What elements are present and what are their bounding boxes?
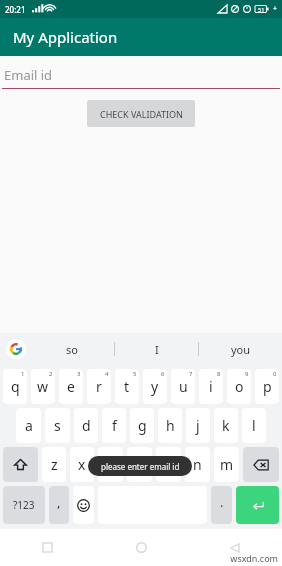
staticText: o [235, 377, 244, 396]
staticText: c [107, 455, 114, 474]
staticText: please enter email id [101, 461, 180, 472]
staticText: v [136, 455, 144, 474]
staticText: e [67, 377, 75, 396]
staticText: s [54, 416, 61, 435]
button[interactable]: Recents [0, 529, 94, 566]
staticText: g [138, 416, 147, 435]
staticText: 51 [258, 6, 265, 13]
staticText: so [66, 342, 78, 357]
button[interactable]: Email id [0, 66, 282, 89]
staticText: t [124, 377, 130, 396]
button[interactable]: u [171, 369, 195, 404]
staticText: 1 [21, 370, 25, 378]
button[interactable]: p [255, 369, 279, 404]
staticText: x [78, 455, 86, 474]
button[interactable]: d [74, 408, 98, 443]
button[interactable]: so [30, 333, 114, 365]
staticText: I [155, 342, 159, 357]
button[interactable]: q [3, 369, 27, 404]
staticText: ?123 [13, 498, 35, 512]
button[interactable]: Back [188, 529, 282, 566]
button[interactable]: t [115, 369, 139, 404]
staticText: i [209, 377, 213, 396]
staticText: p [263, 377, 272, 396]
button[interactable]: , [49, 486, 69, 524]
staticText: + [273, 4, 278, 14]
staticText: y [151, 377, 159, 396]
button[interactable]: Backspace [243, 447, 279, 482]
staticText: 6 [161, 370, 165, 378]
button[interactable]: Home [94, 529, 188, 566]
button[interactable]: Emoji [73, 486, 94, 524]
button[interactable]: r [87, 369, 111, 404]
button[interactable]: m [214, 447, 239, 482]
staticText: n [193, 455, 202, 474]
staticText: d [82, 416, 91, 435]
button[interactable]: Shift [3, 447, 38, 482]
staticText: l [252, 416, 256, 435]
staticText: q [11, 377, 20, 396]
staticText: 3 [77, 370, 81, 378]
staticText: b [164, 455, 173, 474]
button[interactable]: w [31, 369, 55, 404]
staticText: j [196, 416, 200, 435]
button[interactable]: I [115, 333, 198, 365]
staticText: w [37, 377, 49, 396]
staticText: 7 [189, 370, 193, 378]
button[interactable]: o [227, 369, 251, 404]
button[interactable]: s [45, 408, 70, 443]
button[interactable]: . [211, 486, 232, 524]
button[interactable]: i [199, 369, 223, 404]
staticText: u [179, 377, 188, 396]
button[interactable]: a [16, 408, 41, 443]
staticText: 9 [245, 370, 249, 378]
staticText: m [220, 455, 234, 474]
staticText: , [57, 493, 61, 511]
button[interactable]: you [199, 333, 282, 365]
staticText: z [51, 455, 58, 474]
staticText: f [112, 416, 117, 435]
staticText: 2 [49, 370, 53, 378]
staticText: 0 [273, 370, 277, 378]
button[interactable]: n [185, 447, 210, 482]
staticText: 4 [105, 370, 109, 378]
button[interactable]: CHECK VALIDATION [87, 100, 195, 127]
staticText: h [166, 416, 175, 435]
staticText: a [25, 416, 33, 435]
staticText: 5 [133, 370, 137, 378]
button[interactable]: e [59, 369, 83, 404]
button[interactable]: b [156, 447, 181, 482]
staticText: CHECK VALIDATION [100, 108, 183, 120]
button[interactable]: f [102, 408, 126, 443]
staticText: Email id [4, 66, 53, 84]
staticText: My Application [13, 27, 118, 47]
button[interactable]: Enter [236, 486, 279, 524]
button[interactable]: c [98, 447, 123, 482]
staticText: r [96, 377, 102, 396]
button[interactable]: l [242, 408, 266, 443]
button[interactable]: j [186, 408, 210, 443]
button[interactable]: ?123 [3, 486, 45, 524]
staticText: you [231, 342, 251, 357]
staticText: 8 [217, 370, 221, 378]
button[interactable]: k [214, 408, 238, 443]
button[interactable]: v [127, 447, 152, 482]
staticText: 20:21 [5, 4, 26, 15]
button[interactable]: Google search [6, 339, 26, 359]
staticText: wsxdn.com [230, 552, 278, 564]
button[interactable]: g [130, 408, 154, 443]
button[interactable]: y [143, 369, 167, 404]
staticText: . [220, 493, 224, 511]
staticText: k [222, 416, 230, 435]
button[interactable]: h [158, 408, 182, 443]
button[interactable]: z [42, 447, 66, 482]
button[interactable]: x [70, 447, 94, 482]
